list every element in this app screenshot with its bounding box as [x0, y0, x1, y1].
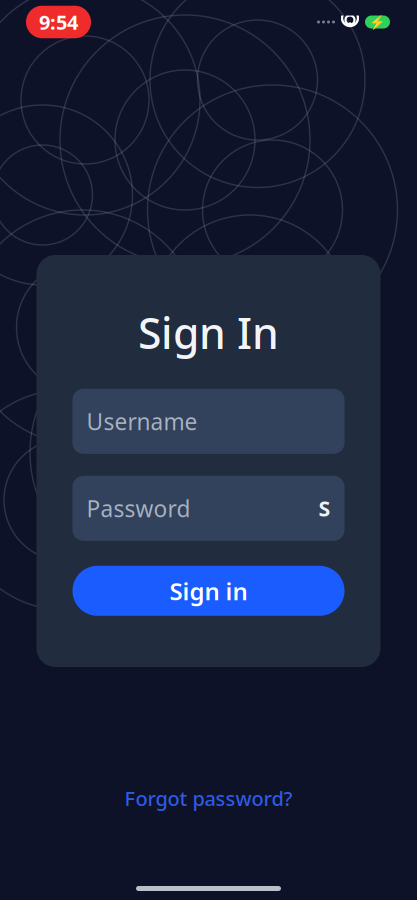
staticText: S [318, 494, 330, 522]
staticText: ⚡ [369, 14, 386, 30]
staticText: Forgot password? [124, 785, 292, 812]
staticText: Username [86, 406, 197, 436]
staticText: Password [86, 493, 190, 523]
staticText: Sign in [169, 575, 247, 607]
button[interactable]: Forgot password? [114, 779, 302, 818]
staticText: 9:54 [39, 9, 78, 35]
button[interactable]: Password [72, 476, 344, 541]
staticText: Sign In [138, 304, 279, 361]
button[interactable]: Username [72, 389, 344, 454]
button[interactable]: Sign in [72, 566, 344, 616]
